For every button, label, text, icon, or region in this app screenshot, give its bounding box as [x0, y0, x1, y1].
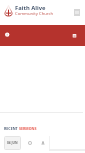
button[interactable]: 04 JUN	[4, 136, 21, 150]
staticText: Community Church	[15, 11, 54, 17]
staticText: RECENT	[4, 126, 19, 131]
button[interactable]: Open navigation menu	[74, 9, 80, 16]
button[interactable]: Home	[3, 29, 11, 37]
staticText: 04 JUN	[7, 141, 18, 145]
staticText: SERMONS	[19, 126, 37, 131]
button[interactable]: RECENT	[4, 126, 37, 131]
button[interactable]: Speaker	[40, 140, 46, 146]
staticText: Faith Alive	[15, 4, 46, 12]
button[interactable]: Listen	[27, 140, 33, 146]
button[interactable]	[49, 136, 85, 151]
button[interactable]: Menu	[70, 31, 79, 40]
